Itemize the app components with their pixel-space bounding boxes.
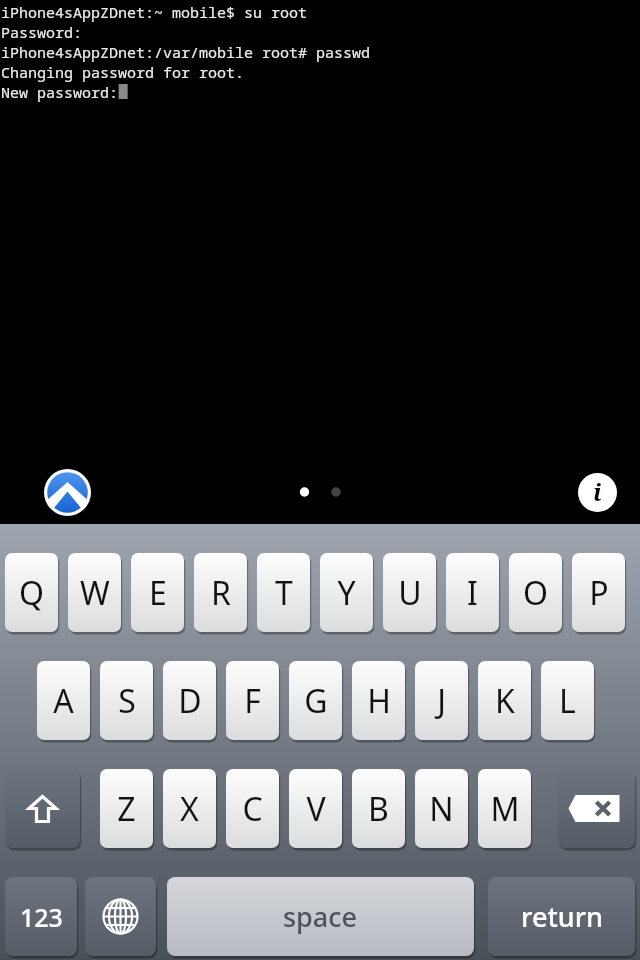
button[interactable]: C xyxy=(226,769,279,848)
staticText: N xyxy=(429,787,454,831)
staticText: Y xyxy=(337,571,356,615)
staticText: W xyxy=(80,571,110,615)
button[interactable]: S xyxy=(100,661,153,740)
staticText: V xyxy=(306,787,326,831)
button[interactable]: O xyxy=(509,553,562,632)
button[interactable]: W xyxy=(68,553,121,632)
staticText: New password: xyxy=(1,82,119,102)
button[interactable]: Info xyxy=(578,473,617,512)
button[interactable]: Y xyxy=(320,553,373,632)
staticText: P xyxy=(589,571,609,615)
staticText: R xyxy=(211,571,231,615)
button[interactable]: N xyxy=(415,769,468,848)
button[interactable]: J xyxy=(415,661,468,740)
staticText: B xyxy=(368,787,389,831)
staticText: E xyxy=(149,571,167,615)
staticText: i xyxy=(593,475,602,508)
button[interactable]: K xyxy=(478,661,531,740)
button[interactable]: T xyxy=(257,553,310,632)
staticText: return xyxy=(521,898,603,935)
staticText: T xyxy=(275,571,293,615)
button[interactable]: U xyxy=(383,553,436,632)
button[interactable]: D xyxy=(163,661,216,740)
button[interactable]: Shift xyxy=(5,769,80,848)
staticText: A xyxy=(53,679,74,723)
staticText: K xyxy=(495,679,515,723)
button[interactable]: Backspace xyxy=(558,769,635,848)
button[interactable]: X xyxy=(163,769,216,848)
staticText: O xyxy=(523,571,548,615)
button[interactable]: return xyxy=(488,877,635,956)
button[interactable]: H xyxy=(352,661,405,740)
staticText: J xyxy=(437,679,446,723)
staticText: iPhone4sAppZDnet:~ mobile$ su root xyxy=(1,2,308,22)
staticText: X xyxy=(180,787,199,831)
button[interactable]: E xyxy=(131,553,184,632)
staticText: I xyxy=(467,571,478,615)
button[interactable]: P xyxy=(572,553,625,632)
staticText: G xyxy=(304,679,328,723)
button[interactable]: Q xyxy=(5,553,58,632)
button[interactable]: Z xyxy=(100,769,153,848)
staticText: Changing password for root. xyxy=(1,62,245,82)
staticText: S xyxy=(118,679,136,723)
staticText: iPhone4sAppZDnet:/var/mobile root# passw… xyxy=(1,42,371,62)
button[interactable]: A xyxy=(37,661,90,740)
staticText: space xyxy=(283,898,358,935)
staticText: U xyxy=(398,571,422,615)
button[interactable]: G xyxy=(289,661,342,740)
staticText: L xyxy=(559,679,576,723)
staticText: Z xyxy=(117,787,136,831)
button[interactable]: M xyxy=(478,769,531,848)
staticText: 123 xyxy=(20,900,63,934)
button[interactable]: space xyxy=(167,877,474,956)
button[interactable]: 123 xyxy=(5,877,77,956)
button[interactable]: L xyxy=(541,661,594,740)
staticText: F xyxy=(244,679,261,723)
staticText: C xyxy=(242,787,263,831)
button[interactable]: V xyxy=(289,769,342,848)
button[interactable]: Change keyboard language xyxy=(85,877,156,956)
staticText: M xyxy=(490,787,520,831)
button[interactable]: Scroll up xyxy=(44,469,91,516)
button[interactable]: R xyxy=(194,553,247,632)
button[interactable]: I xyxy=(446,553,499,632)
staticText: Q xyxy=(19,571,44,615)
button[interactable]: F xyxy=(226,661,279,740)
staticText: Password: xyxy=(1,22,83,42)
button[interactable]: B xyxy=(352,769,405,848)
staticText: D xyxy=(178,679,202,723)
staticText: H xyxy=(367,679,391,723)
